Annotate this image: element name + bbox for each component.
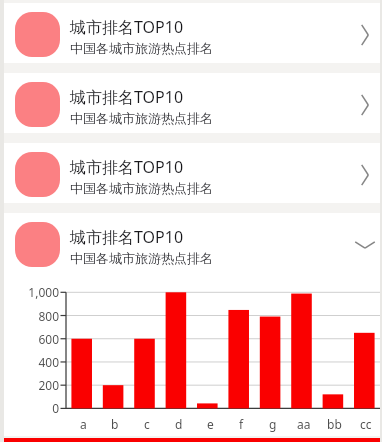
staticText: aa: [297, 416, 311, 432]
staticText: 中国各城市旅游热点排名: [70, 40, 213, 56]
button[interactable]: 城市排名TOP10: [4, 3, 380, 63]
staticText: 中国各城市旅游热点排名: [70, 110, 213, 126]
staticText: 中国各城市旅游热点排名: [70, 250, 213, 266]
staticText: 200: [38, 377, 59, 393]
button[interactable]: Collapse: [350, 230, 380, 260]
button[interactable]: Expand: [350, 90, 380, 120]
button[interactable]: 城市排名TOP10: [4, 213, 380, 273]
staticText: cc: [360, 416, 372, 432]
button[interactable]: Expand: [350, 160, 380, 190]
button[interactable]: Expand: [350, 20, 380, 50]
staticText: d: [175, 416, 183, 432]
staticText: 城市排名TOP10: [70, 156, 184, 178]
staticText: c: [144, 416, 150, 432]
staticText: 800: [38, 308, 59, 324]
staticText: 600: [38, 331, 59, 347]
staticText: 400: [38, 354, 59, 370]
staticText: 城市排名TOP10: [70, 86, 184, 108]
staticText: g: [269, 416, 277, 432]
staticText: b: [111, 416, 119, 432]
staticText: 0: [52, 400, 59, 416]
staticText: bb: [327, 416, 342, 432]
staticText: a: [80, 416, 87, 432]
button[interactable]: 城市排名TOP10: [4, 73, 380, 133]
staticText: 城市排名TOP10: [70, 226, 184, 248]
staticText: e: [207, 416, 214, 432]
button[interactable]: 城市排名TOP10: [4, 143, 380, 203]
staticText: 1,000: [28, 284, 59, 300]
staticText: 中国各城市旅游热点排名: [70, 180, 213, 196]
staticText: f: [239, 416, 244, 432]
staticText: 城市排名TOP10: [70, 16, 184, 38]
